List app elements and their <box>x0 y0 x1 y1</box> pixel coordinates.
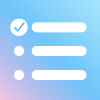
button[interactable]: Task 3 <box>0 0 100 100</box>
button[interactable]: Completed task <box>0 0 100 100</box>
button[interactable]: Task 2 <box>0 0 100 100</box>
